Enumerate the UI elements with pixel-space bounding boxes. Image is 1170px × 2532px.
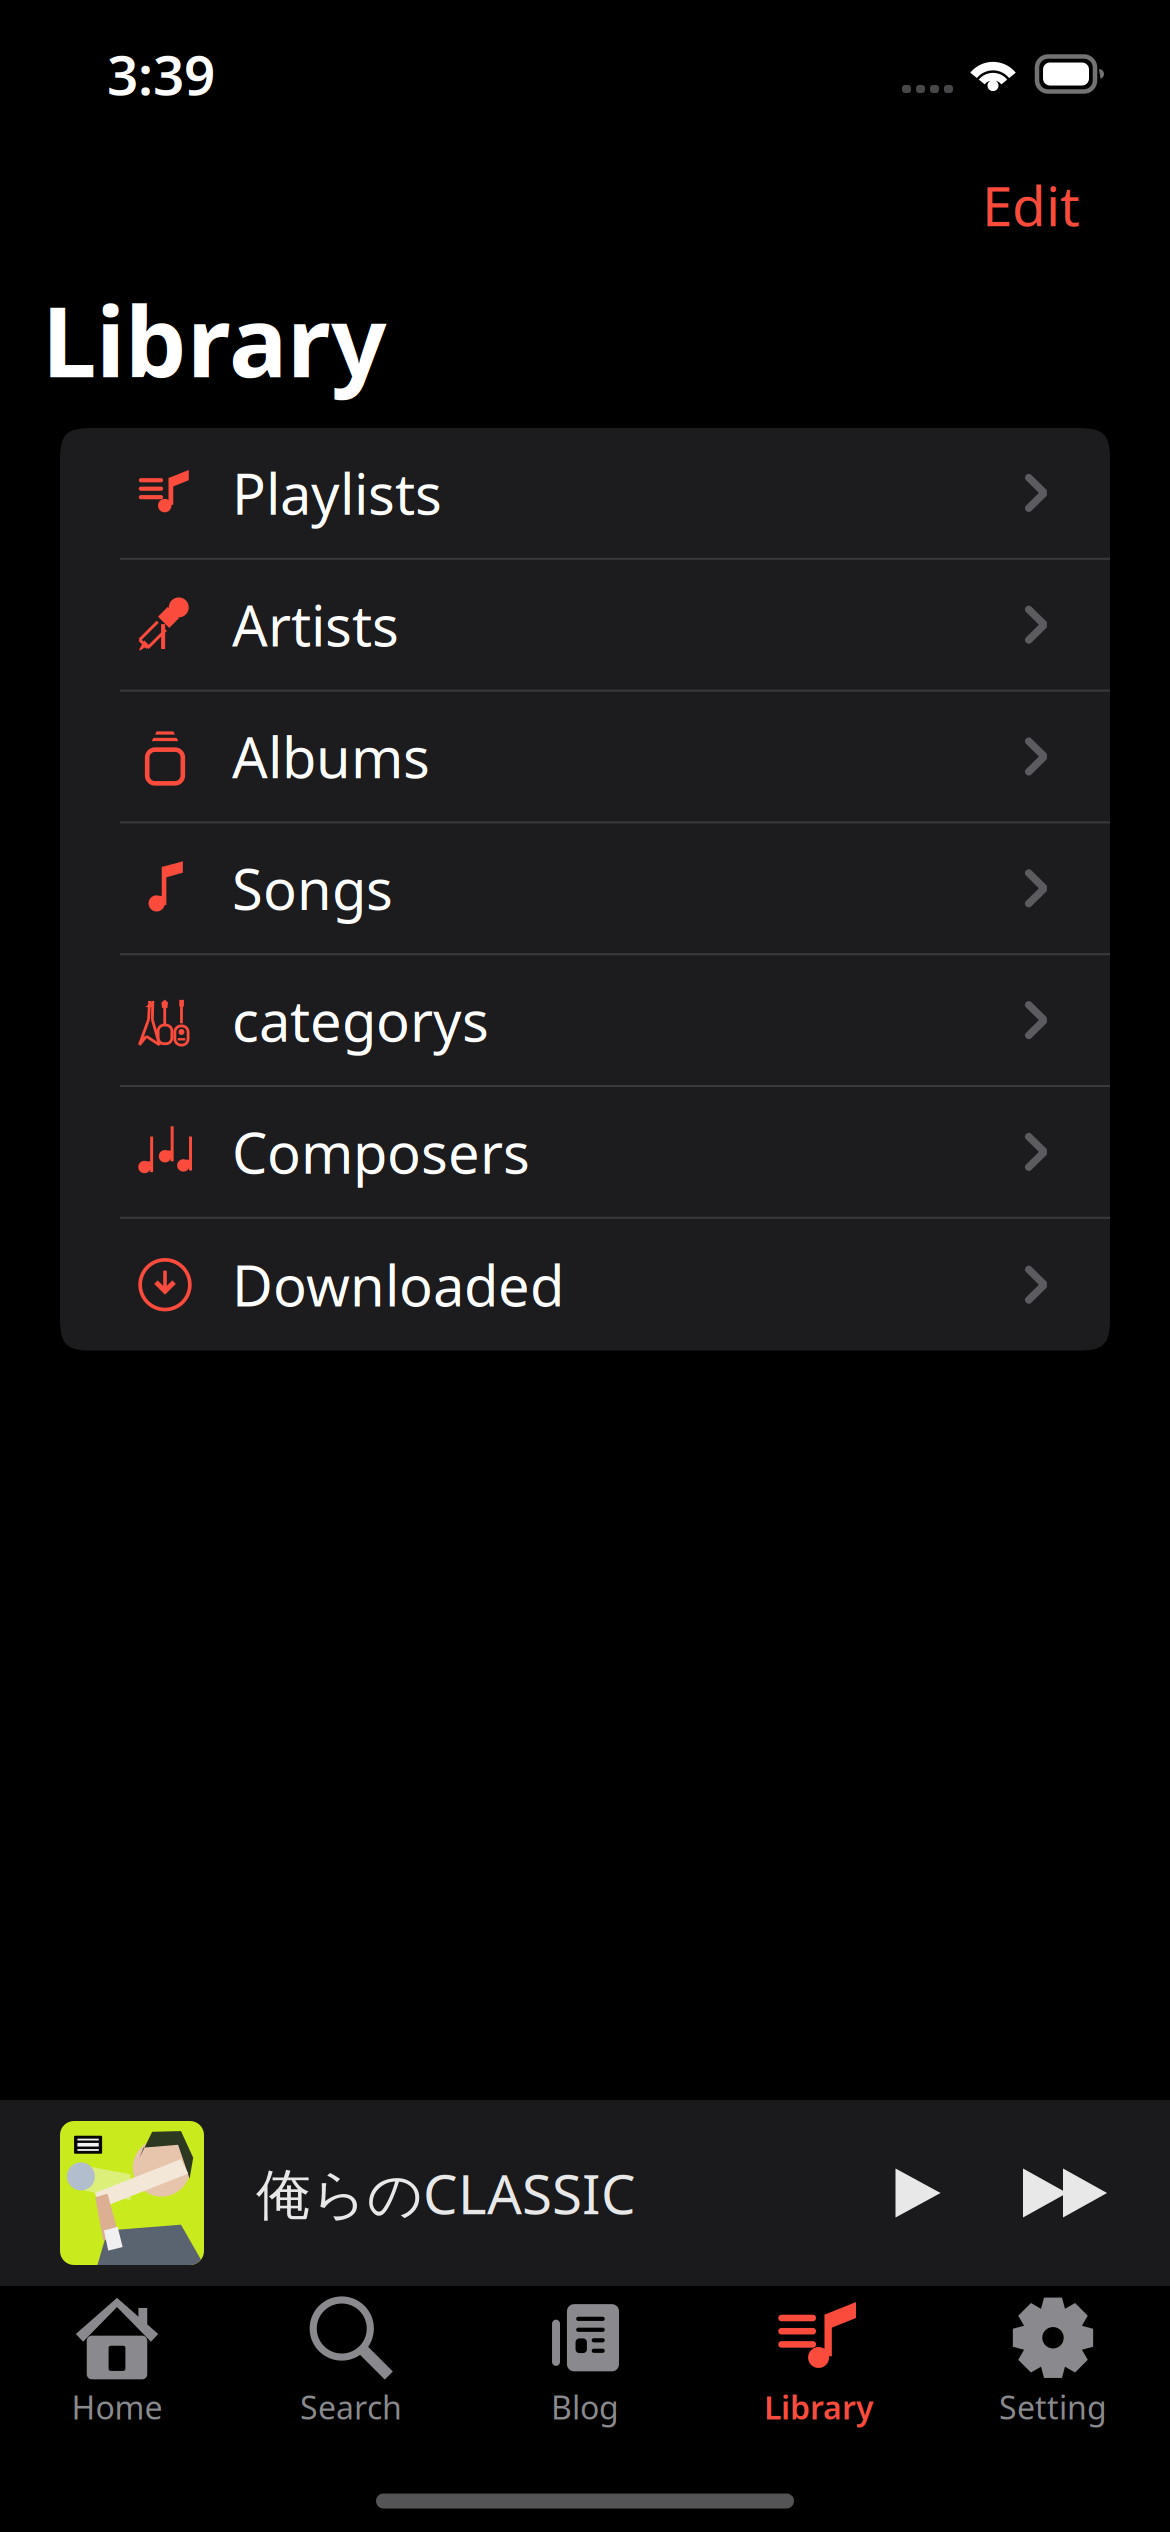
button[interactable]: Home: [0, 2286, 234, 2436]
staticText: categorys: [232, 983, 489, 1057]
button[interactable]: categorys: [60, 955, 1110, 1087]
staticText: Albums: [232, 719, 430, 794]
staticText: Home: [71, 2386, 162, 2428]
button[interactable]: Play: [862, 2127, 972, 2259]
button[interactable]: Search: [234, 2286, 468, 2436]
staticText: Playlists: [232, 456, 442, 530]
button[interactable]: Playlists: [60, 428, 1110, 560]
staticText: Composers: [232, 1115, 530, 1189]
staticText: 俺らのCLASSIC: [256, 2157, 636, 2229]
staticText: Edit: [982, 169, 1080, 241]
button[interactable]: Albums: [60, 692, 1110, 823]
staticText: Search: [300, 2386, 402, 2428]
button[interactable]: Downloaded: [60, 1219, 1110, 1351]
button[interactable]: Songs: [60, 823, 1110, 955]
button[interactable]: Composers: [60, 1087, 1110, 1219]
staticText: Library: [764, 2386, 874, 2428]
staticText: 3:39: [107, 38, 215, 110]
staticText: Artists: [232, 587, 399, 662]
staticText: Blog: [551, 2386, 619, 2428]
staticText: Songs: [232, 851, 393, 925]
button[interactable]: Library: [702, 2286, 936, 2436]
staticText: Downloaded: [232, 1247, 564, 1322]
button[interactable]: Edit: [968, 157, 1094, 253]
staticText: Library: [42, 275, 387, 404]
button[interactable]: Now playing artwork: [60, 2121, 204, 2265]
staticText: Setting: [999, 2386, 1107, 2428]
button[interactable]: Artists: [60, 560, 1110, 692]
button[interactable]: Next track: [1006, 2127, 1124, 2259]
button[interactable]: Setting: [936, 2286, 1170, 2436]
button[interactable]: Blog: [468, 2286, 702, 2436]
